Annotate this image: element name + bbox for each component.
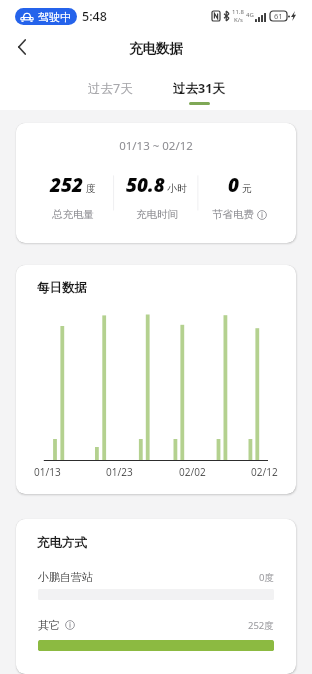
staticText: 小鹏自营站 bbox=[38, 570, 93, 584]
staticText: 11.8 bbox=[232, 8, 244, 16]
staticText: 0 bbox=[228, 172, 240, 198]
staticText: 每日数据 bbox=[37, 280, 87, 296]
staticText: 度 bbox=[86, 182, 96, 195]
staticText: 02/02 bbox=[179, 465, 206, 479]
staticText: 50.8 bbox=[126, 172, 165, 198]
staticText: 充电数据 bbox=[129, 40, 183, 57]
staticText: 充电时间 bbox=[136, 208, 178, 221]
staticText: 过去31天 bbox=[173, 80, 225, 97]
button[interactable]: Back bbox=[0, 28, 44, 66]
staticText: 4G bbox=[246, 11, 254, 19]
staticText: 过去7天 bbox=[88, 80, 133, 97]
staticText: 02/12 bbox=[251, 465, 278, 479]
staticText: 充电方式 bbox=[37, 535, 87, 551]
button[interactable]: 过去31天 bbox=[173, 80, 225, 105]
staticText: 0度 bbox=[259, 571, 274, 584]
staticText: 01/23 bbox=[106, 465, 133, 479]
staticText: 61 bbox=[274, 11, 283, 21]
staticText: K/s bbox=[234, 16, 243, 24]
staticText: 01/13 bbox=[34, 465, 61, 479]
staticText: 小时 bbox=[167, 182, 187, 195]
staticText: 其它 bbox=[38, 618, 60, 632]
staticText: 元 bbox=[242, 182, 252, 195]
staticText: 节省电费 bbox=[212, 208, 254, 221]
staticText: 总充电量 bbox=[52, 208, 94, 221]
staticText: 驾驶中 bbox=[38, 10, 71, 24]
staticText: 252度 bbox=[248, 619, 274, 632]
button[interactable]: 过去7天 bbox=[88, 80, 133, 102]
staticText: 5:48 bbox=[82, 8, 107, 25]
staticText: 01/13 ~ 02/12 bbox=[16, 138, 296, 154]
staticText: 252 bbox=[50, 172, 84, 198]
